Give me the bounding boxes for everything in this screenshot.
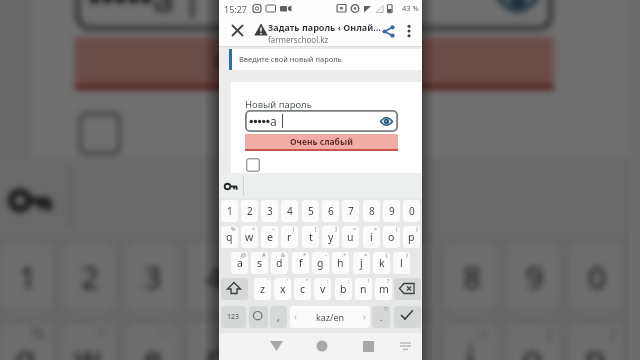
staticText: w (245, 230, 254, 244)
button[interactable]: 3 (261, 200, 278, 222)
button[interactable]: 7 (378, 242, 432, 311)
button[interactable]: y (322, 226, 339, 248)
button[interactable] (382, 25, 395, 38)
button[interactable]: 5 (302, 200, 319, 222)
button[interactable]: t (253, 323, 306, 360)
button[interactable]: p (403, 226, 420, 248)
button[interactable] (270, 341, 283, 351)
button[interactable]: d (271, 252, 288, 274)
button[interactable]: 8 (363, 200, 380, 222)
button[interactable] (497, 0, 538, 12)
button[interactable]: 6 (322, 200, 339, 222)
button[interactable]: i (363, 226, 380, 248)
button[interactable]: t (302, 226, 319, 248)
button[interactable]: 123 (221, 306, 246, 328)
button[interactable]: 9 (507, 242, 560, 311)
button[interactable] (394, 278, 421, 300)
staticText: [ (315, 226, 317, 232)
button[interactable]: u (378, 323, 432, 360)
button[interactable] (380, 117, 393, 126)
staticText: › (363, 310, 366, 322)
button[interactable] (394, 306, 421, 328)
button[interactable]: n (355, 278, 372, 300)
button[interactable]: a (231, 252, 248, 274)
button[interactable]: g (312, 252, 329, 274)
button[interactable]: q (221, 226, 238, 248)
button[interactable]: o (507, 323, 560, 360)
button[interactable]: kaz/en (290, 306, 370, 328)
button[interactable] (231, 24, 244, 37)
button[interactable]: h (332, 252, 349, 274)
button[interactable]: a (245, 110, 398, 132)
staticText: 43 % (402, 3, 419, 13)
button[interactable]: u (342, 226, 359, 248)
staticText: kaz/en (316, 311, 345, 323)
button[interactable]: 6 (316, 242, 369, 311)
button[interactable]: 1 (221, 200, 238, 222)
button[interactable]: j (353, 252, 370, 274)
button[interactable]: k (373, 252, 390, 274)
staticText: o (522, 336, 544, 360)
button[interactable]: r (281, 226, 298, 248)
staticText: p (408, 230, 415, 244)
staticText: s (257, 256, 263, 270)
button[interactable]: . (372, 306, 390, 328)
button[interactable]: w (241, 226, 258, 248)
staticText: : (327, 278, 329, 284)
staticText: | (222, 323, 234, 342)
button[interactable]: 3 (125, 242, 178, 311)
button[interactable]: w (62, 323, 115, 360)
button[interactable]: 0 (569, 242, 622, 311)
button[interactable]: 2 (241, 200, 258, 222)
button[interactable]: f (292, 252, 309, 274)
button[interactable] (9, 183, 53, 218)
button[interactable]: 2 (62, 242, 115, 311)
button[interactable]: p (569, 323, 622, 360)
staticText: Введите свой новый пароль. (239, 54, 344, 64)
staticText: t (309, 230, 313, 244)
button[interactable] (316, 340, 328, 352)
button[interactable]: i (444, 323, 497, 360)
button[interactable]: 8 (444, 242, 497, 311)
button[interactable]: v (314, 278, 331, 300)
staticText: & (281, 252, 286, 258)
button[interactable] (399, 342, 412, 351)
button[interactable]: 4 (187, 242, 241, 311)
button[interactable] (246, 158, 260, 172)
button[interactable]: , (270, 306, 287, 328)
staticText: Очень слабый (290, 136, 353, 148)
button[interactable]: e (261, 226, 278, 248)
button[interactable]: l (393, 252, 410, 274)
button[interactable] (78, 112, 122, 155)
button[interactable]: 0 (403, 200, 420, 222)
button[interactable] (249, 306, 268, 328)
button[interactable]: 5 (253, 242, 306, 311)
button[interactable]: c (294, 278, 311, 300)
button[interactable] (406, 24, 412, 38)
button[interactable]: z (254, 278, 271, 300)
staticText: % (231, 226, 236, 232)
staticText: ? (387, 278, 390, 284)
button[interactable]: m (375, 278, 392, 300)
staticText: ) (406, 252, 408, 258)
button[interactable] (224, 181, 238, 192)
button[interactable]: s (251, 252, 268, 274)
button[interactable]: 7 (342, 200, 359, 222)
button[interactable]: b (335, 278, 352, 300)
staticText: i (370, 230, 373, 244)
staticText: r (206, 336, 222, 360)
button[interactable]: y (316, 323, 369, 360)
button[interactable]: a (75, 0, 554, 31)
button[interactable]: q (0, 323, 53, 360)
button[interactable]: 4 (281, 200, 298, 222)
staticText: ^ (252, 226, 256, 232)
button[interactable]: x (274, 278, 291, 300)
button[interactable]: r (187, 323, 241, 360)
button[interactable]: e (125, 323, 178, 360)
button[interactable] (221, 278, 248, 300)
button[interactable]: 1 (0, 242, 53, 311)
button[interactable]: 9 (383, 200, 400, 222)
button[interactable]: o (383, 226, 400, 248)
